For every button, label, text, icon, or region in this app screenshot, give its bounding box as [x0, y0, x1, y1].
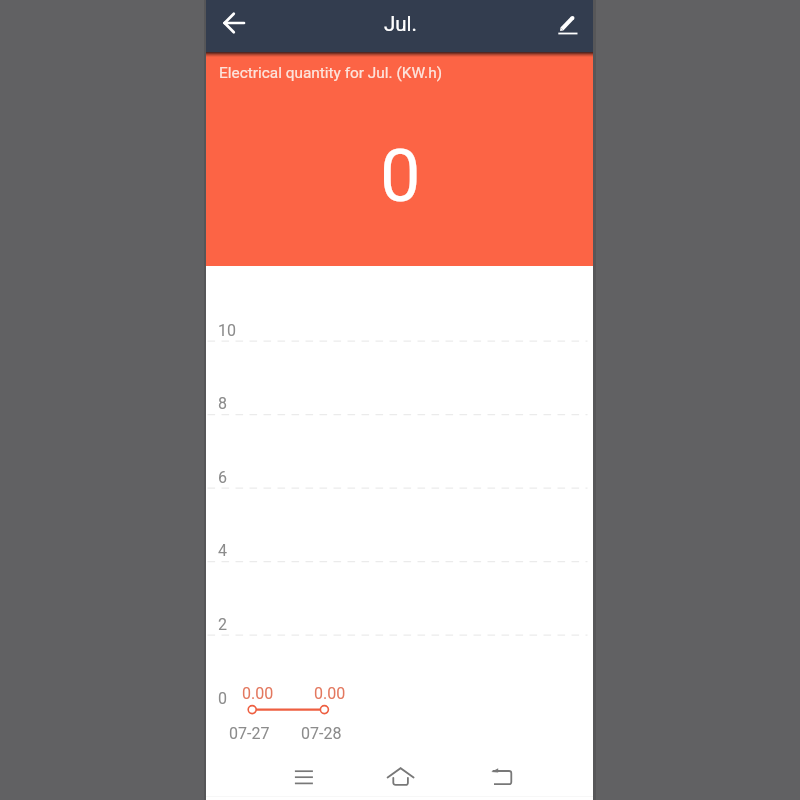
staticText: 07-27 [229, 724, 270, 743]
staticText: 10 [218, 321, 236, 340]
staticText: 0.00 [314, 684, 346, 703]
button[interactable]: Recent apps [280, 752, 328, 800]
staticText: 07-28 [301, 724, 342, 743]
button[interactable]: Edit [546, 5, 588, 47]
staticText: 6 [218, 468, 227, 487]
button[interactable]: Back [478, 752, 526, 800]
button[interactable]: Home [376, 752, 424, 800]
staticText: 0 [380, 134, 421, 218]
staticText: 8 [218, 394, 227, 413]
staticText: 0 [218, 689, 227, 708]
staticText: 2 [218, 615, 227, 634]
button[interactable]: Back [211, 2, 259, 50]
staticText: 0.00 [242, 684, 274, 703]
staticText: Electrical quantity for Jul. (KW.h) [219, 64, 443, 82]
staticText: 4 [218, 541, 227, 560]
staticText: Jul. [384, 12, 418, 36]
